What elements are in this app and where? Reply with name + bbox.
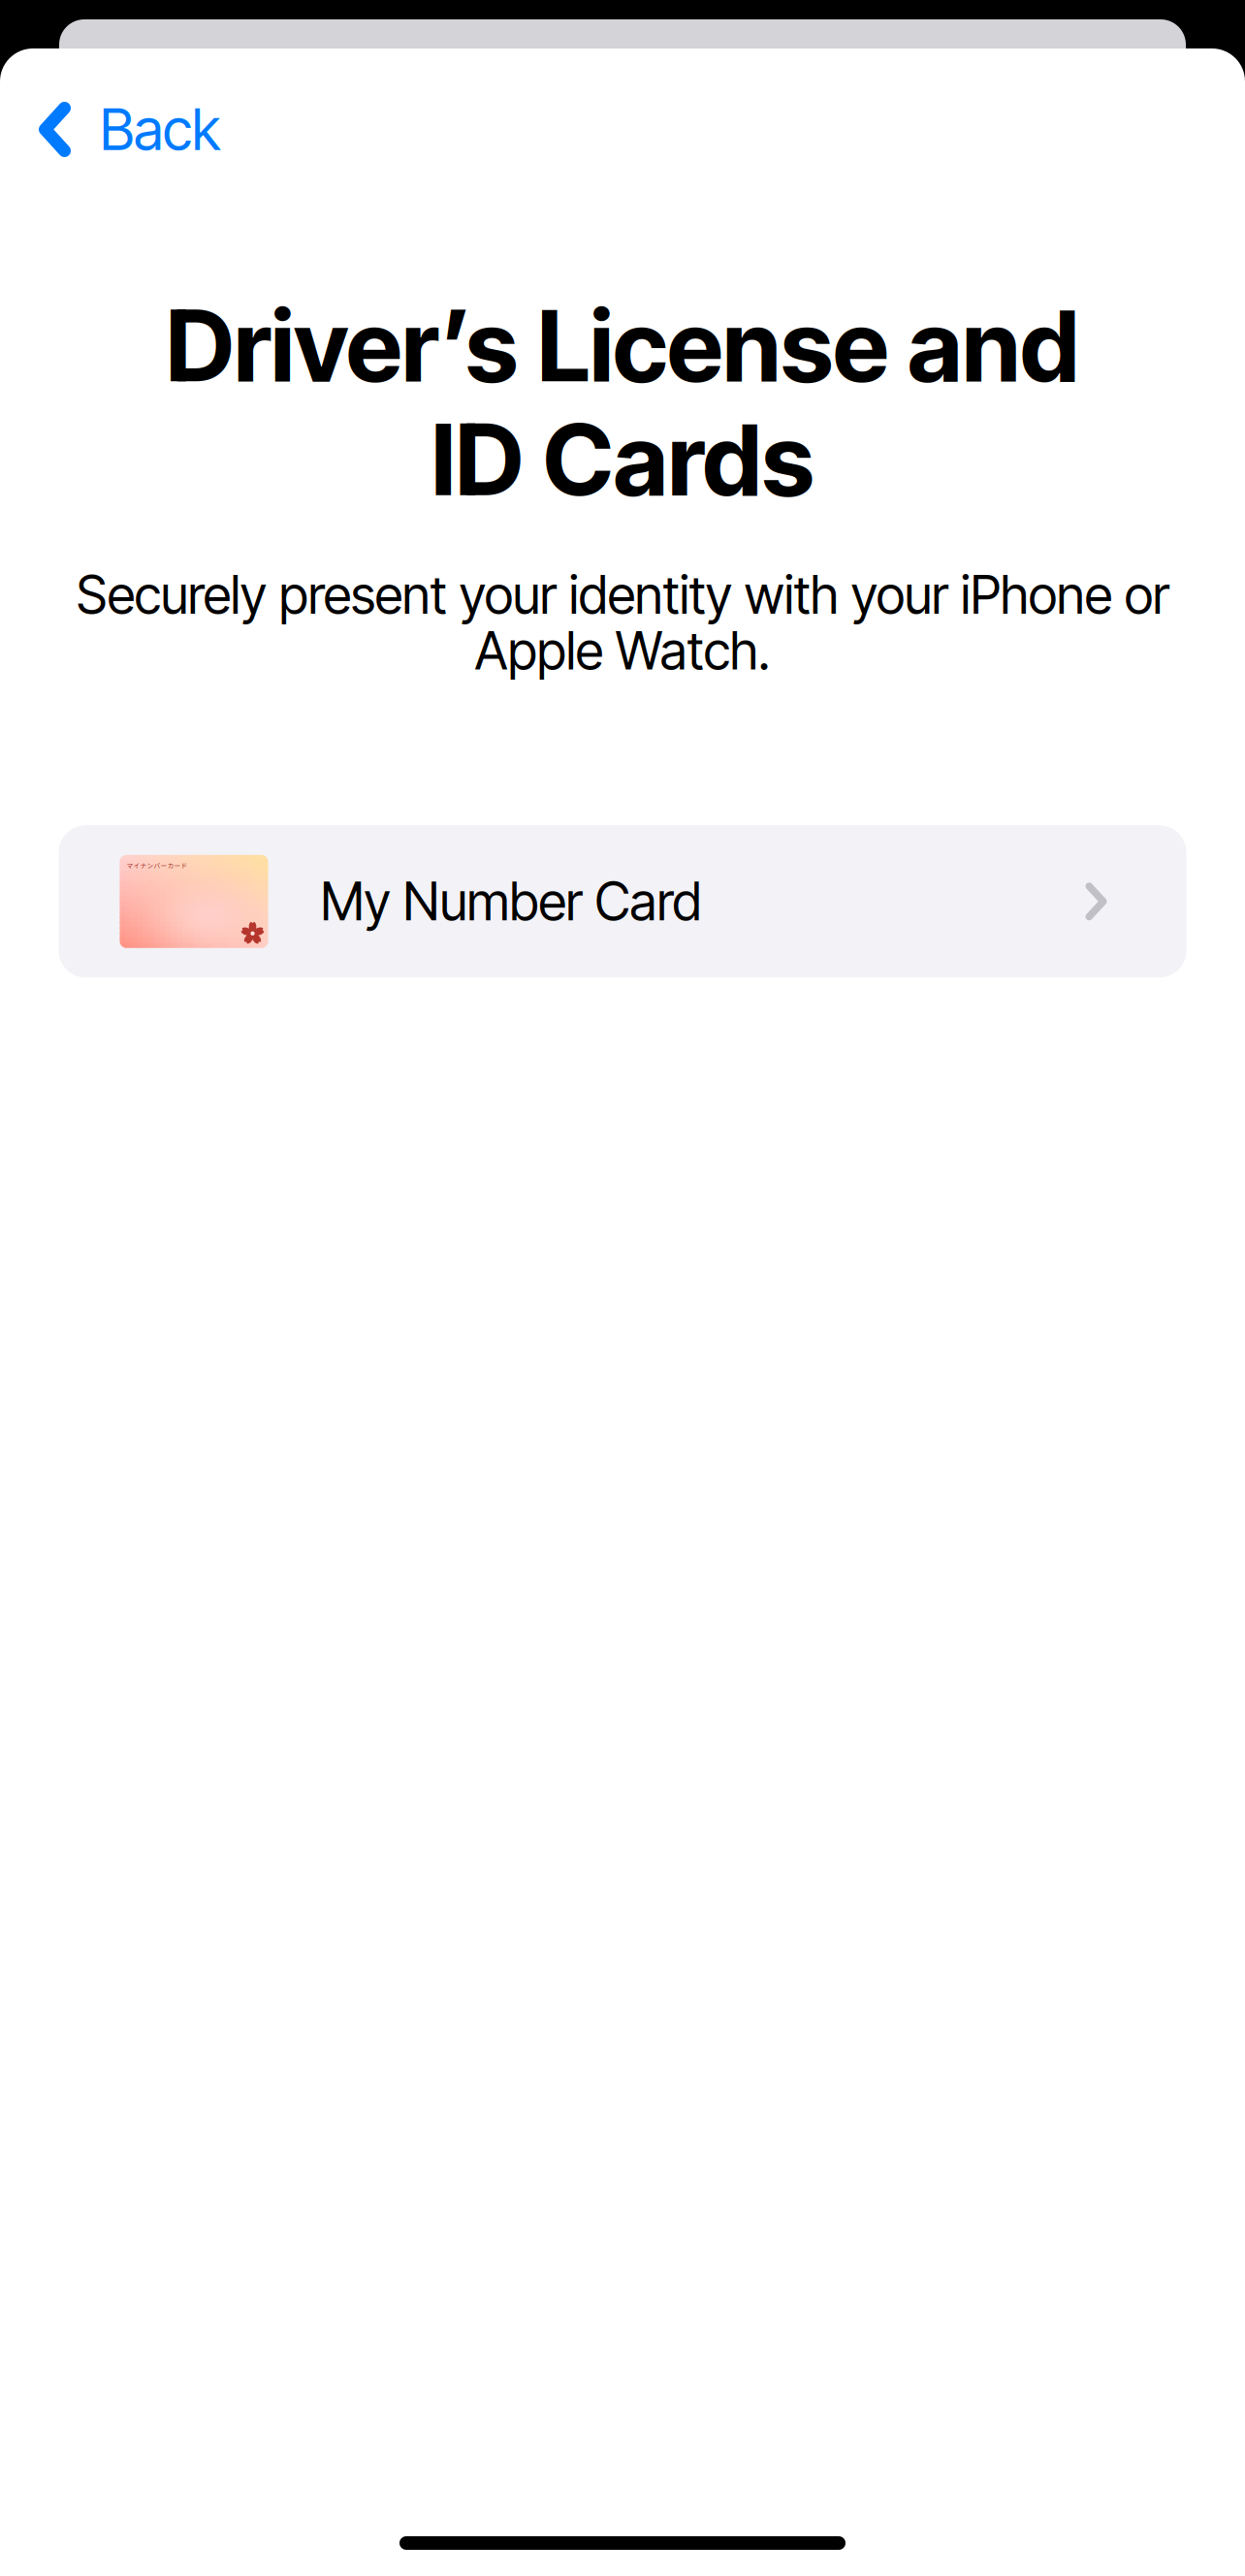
- staticText: Driver’s License and ID Cards: [166, 286, 1079, 519]
- staticText: Securely present your identity with your…: [76, 563, 1169, 682]
- button[interactable]: Back: [0, 81, 253, 177]
- button[interactable]: マイナンバーカード: [59, 825, 1186, 978]
- staticText: マイナンバーカード: [127, 861, 188, 870]
- staticText: My Number Card: [320, 870, 702, 933]
- staticText: Back: [100, 95, 220, 164]
